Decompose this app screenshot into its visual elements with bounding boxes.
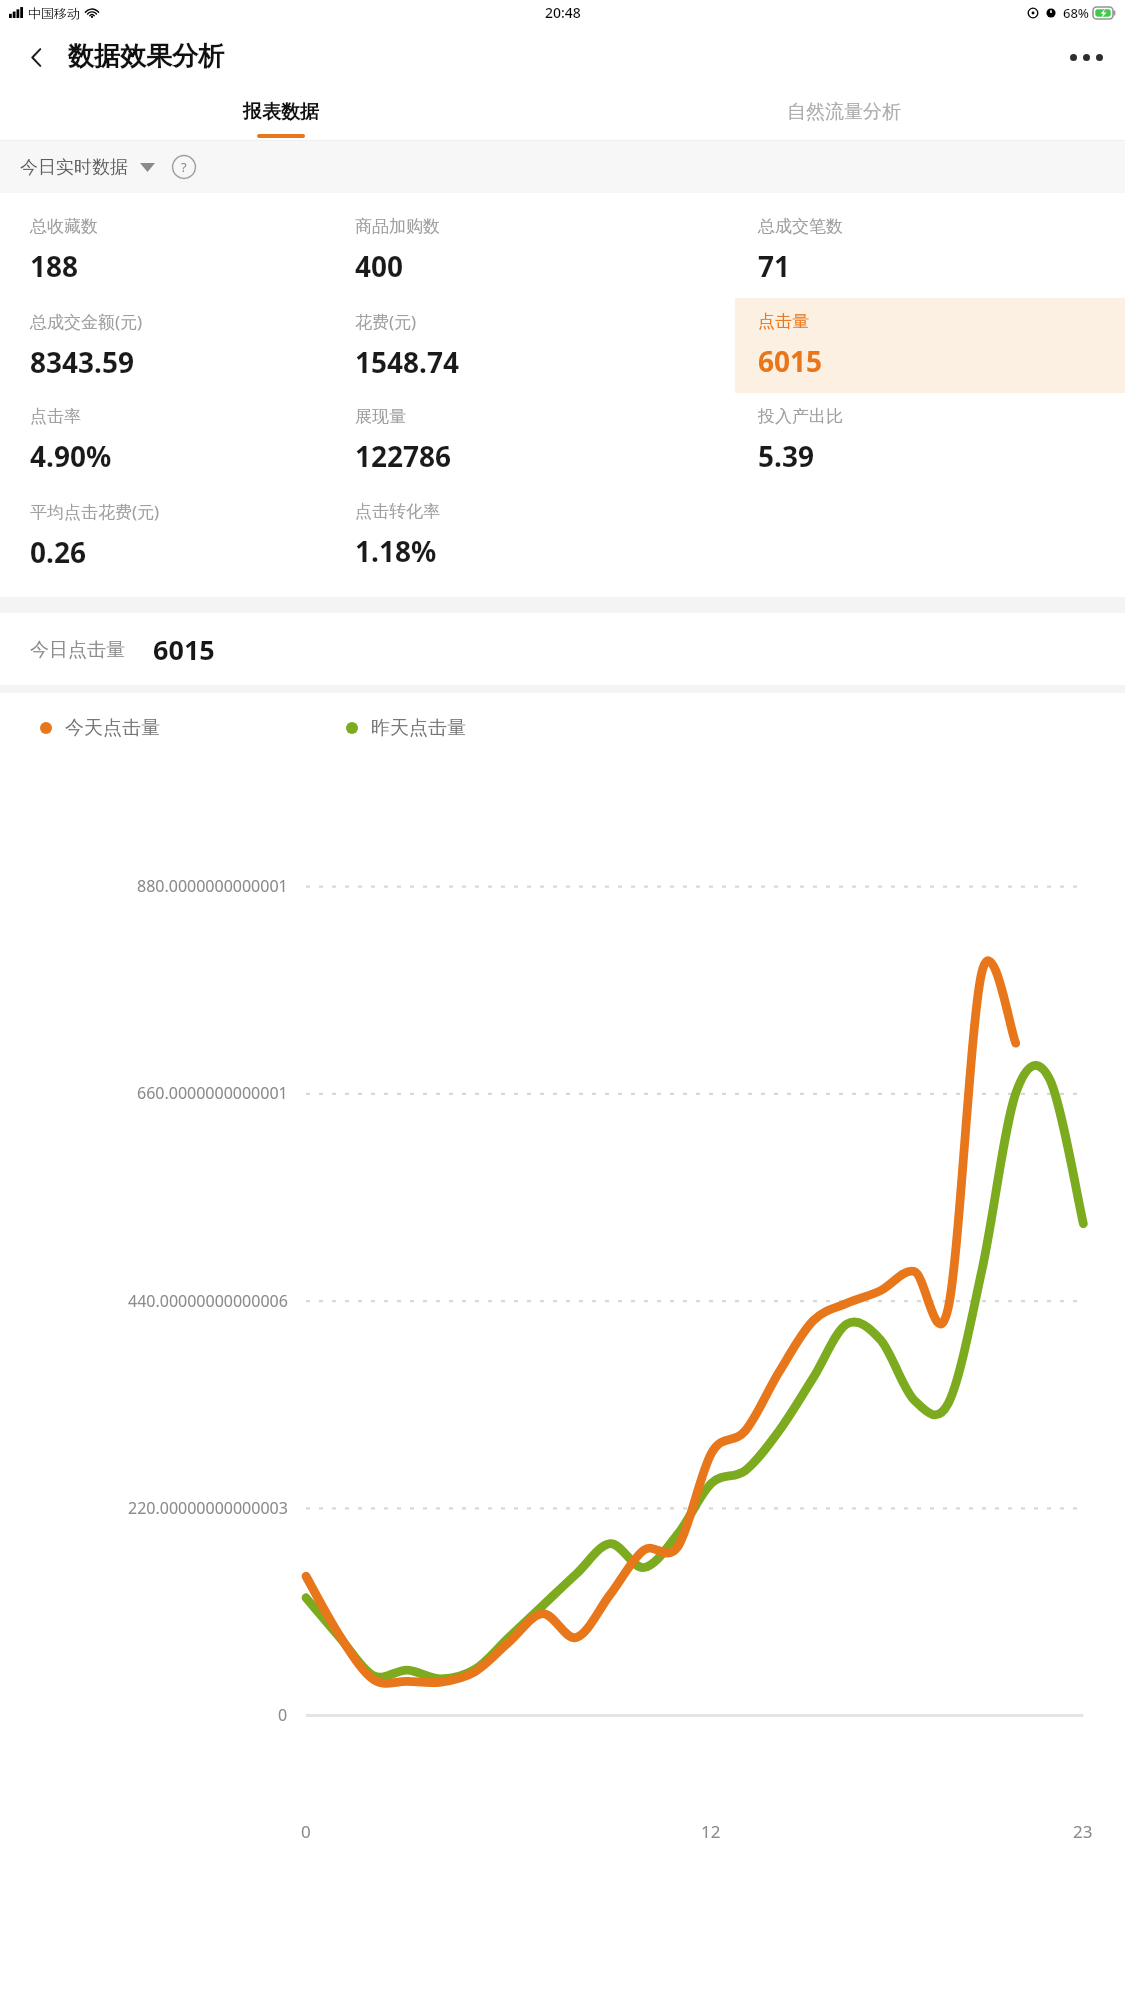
staticText: 20:48 [545,3,581,22]
staticText: 今天点击量 [65,716,160,740]
staticText: 8343.59 [30,343,134,381]
staticText: 平均点击花费(元) [30,500,160,523]
staticText: 总收藏数 [30,216,98,237]
staticText: 6015 [758,342,823,380]
button[interactable]: 点击率 [0,393,332,488]
staticText: 今日点击量 [30,638,125,662]
staticText: 点击量 [758,311,809,332]
button[interactable]: 今日实时数据 [20,154,197,180]
staticText: 71 [758,247,791,285]
staticText: 4.90% [30,437,112,475]
staticText: 122786 [355,437,452,475]
button[interactable]: 花费(元) [332,298,735,393]
button[interactable]: 报表数据 [0,88,562,141]
staticText: 中国移动 [28,5,80,21]
staticText: 440.00000000000006 [128,1290,288,1312]
button[interactable]: 自然流量分析 [562,88,1125,141]
button[interactable]: 点击转化率 [332,488,735,583]
staticText: 点击率 [30,406,81,427]
staticText: 400 [355,247,404,285]
button[interactable]: 点击量 [735,298,1125,393]
staticText: 1.18% [355,532,437,570]
staticText: 23 [1073,1820,1093,1843]
button[interactable]: Help [171,154,197,180]
button[interactable]: Back [14,35,58,79]
staticText: 花费(元) [355,310,417,333]
button[interactable]: 总成交笔数 [735,203,1125,298]
staticText: 6015 [153,631,215,668]
staticText: ? [181,158,187,176]
staticText: 5.39 [758,437,814,475]
staticText: 0 [278,1704,288,1726]
staticText: 点击转化率 [355,501,440,522]
staticText: 188 [30,247,79,285]
button[interactable]: 总收藏数 [0,203,332,298]
button[interactable]: 商品加购数 [332,203,735,298]
staticText: 展现量 [355,406,406,427]
staticText: 自然流量分析 [787,100,901,124]
staticText: 68% [1063,4,1089,22]
button[interactable]: 平均点击花费(元) [0,488,332,583]
staticText: 总成交笔数 [758,216,843,237]
staticText: 总成交金额(元) [30,310,143,333]
staticText: 数据效果分析 [68,40,224,73]
staticText: 12 [701,1820,721,1843]
staticText: 220.00000000000003 [128,1497,288,1519]
staticText: 商品加购数 [355,216,440,237]
staticText: 投入产出比 [758,406,843,427]
button[interactable]: 展现量 [332,393,735,488]
staticText: 660.0000000000001 [137,1082,288,1104]
button[interactable]: More options [1061,32,1111,82]
staticText: 昨天点击量 [371,716,466,740]
staticText: 报表数据 [243,100,319,124]
button[interactable]: 总成交金额(元) [0,298,332,393]
staticText: 0.26 [30,533,86,571]
staticText: 0 [301,1820,311,1843]
staticText: 1548.74 [355,343,459,381]
staticText: 880.0000000000001 [137,875,288,897]
button[interactable]: 投入产出比 [735,393,1125,488]
staticText: 今日实时数据 [20,156,128,179]
